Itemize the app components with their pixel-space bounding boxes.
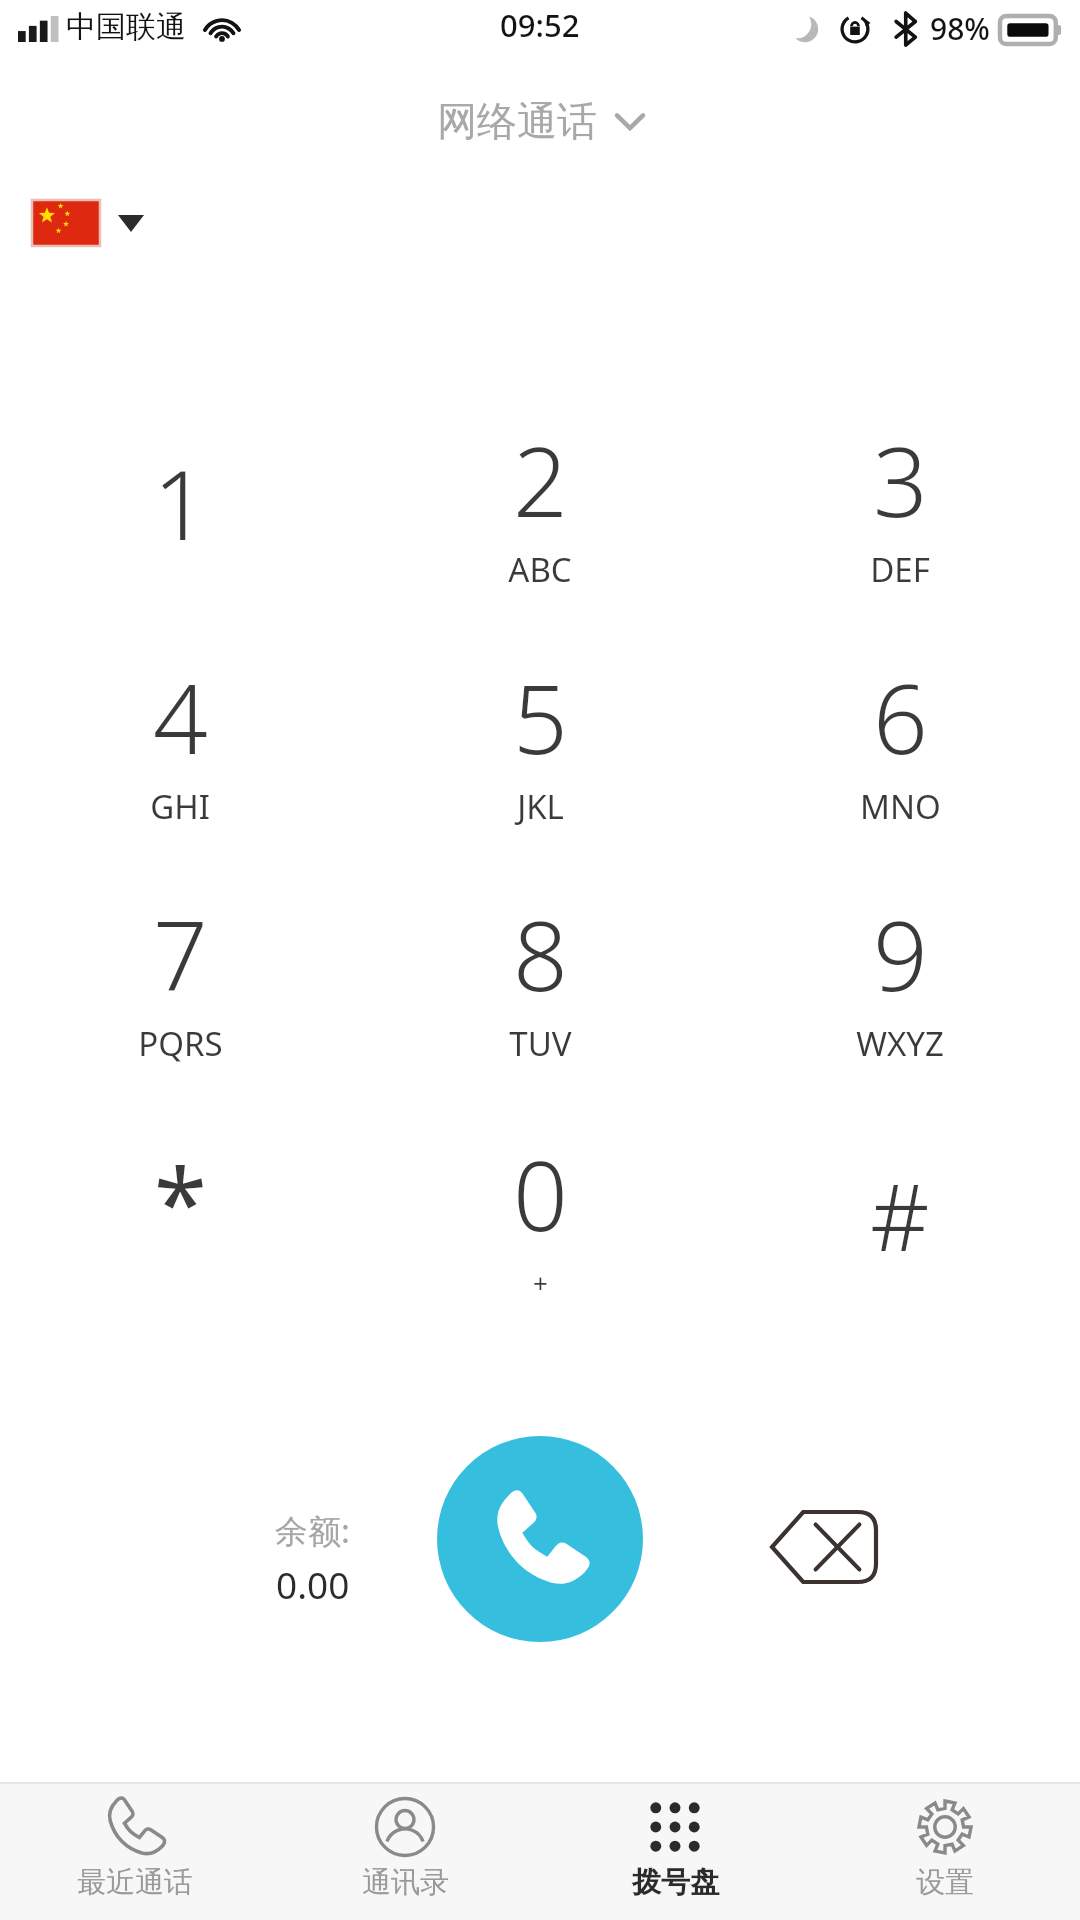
- staticText: MNO: [860, 784, 941, 829]
- staticText: 拨号盘: [632, 1864, 719, 1901]
- staticText: 通讯录: [362, 1864, 449, 1901]
- button[interactable]: 网络通话: [427, 92, 653, 150]
- staticText: 1: [153, 437, 208, 568]
- button[interactable]: Select country: [18, 190, 158, 256]
- button[interactable]: 最近通话: [0, 1784, 270, 1920]
- staticText: 网络通话: [437, 96, 597, 146]
- staticText: 5: [513, 651, 568, 782]
- button[interactable]: 6: [720, 635, 1080, 872]
- staticText: GHI: [150, 784, 210, 829]
- button[interactable]: 通讯录: [270, 1784, 540, 1920]
- button[interactable]: 7: [0, 872, 360, 1109]
- button[interactable]: Call: [437, 1436, 643, 1642]
- staticText: 8: [513, 888, 568, 1019]
- button[interactable]: 2: [360, 398, 720, 635]
- staticText: JKL: [517, 784, 564, 829]
- staticText: 最近通话: [77, 1864, 193, 1901]
- staticText: 0.00: [276, 1559, 350, 1609]
- staticText: 3: [873, 414, 928, 545]
- button[interactable]: 3: [720, 398, 1080, 635]
- button[interactable]: 设置: [810, 1784, 1080, 1920]
- staticText: WXYZ: [856, 1021, 944, 1066]
- staticText: TUV: [509, 1021, 572, 1066]
- staticText: 09:52: [500, 4, 580, 46]
- staticText: PQRS: [138, 1021, 223, 1066]
- staticText: +: [533, 1265, 548, 1300]
- staticText: 7: [153, 888, 208, 1019]
- button[interactable]: 8: [360, 872, 720, 1109]
- staticText: 2: [513, 414, 568, 545]
- staticText: DEF: [870, 547, 930, 592]
- staticText: 设置: [916, 1864, 974, 1901]
- button[interactable]: 5: [360, 635, 720, 872]
- button[interactable]: #: [720, 1109, 1080, 1346]
- button[interactable]: 4: [0, 635, 360, 872]
- staticText: 0: [513, 1128, 568, 1259]
- button[interactable]: 0: [360, 1109, 720, 1346]
- staticText: 9: [873, 888, 928, 1019]
- button[interactable]: 9: [720, 872, 1080, 1109]
- staticText: 4: [153, 651, 208, 782]
- button[interactable]: 拨号盘: [540, 1784, 810, 1920]
- staticText: *: [154, 1136, 207, 1267]
- staticText: 6: [873, 651, 928, 782]
- button[interactable]: Delete: [758, 1498, 890, 1596]
- staticText: 余额:: [275, 1508, 350, 1553]
- staticText: 中国联通: [66, 8, 186, 46]
- button[interactable]: *: [0, 1109, 360, 1346]
- staticText: ABC: [508, 547, 572, 592]
- staticText: #: [870, 1153, 930, 1278]
- staticText: 98%: [930, 8, 990, 49]
- button[interactable]: 1: [0, 398, 360, 635]
